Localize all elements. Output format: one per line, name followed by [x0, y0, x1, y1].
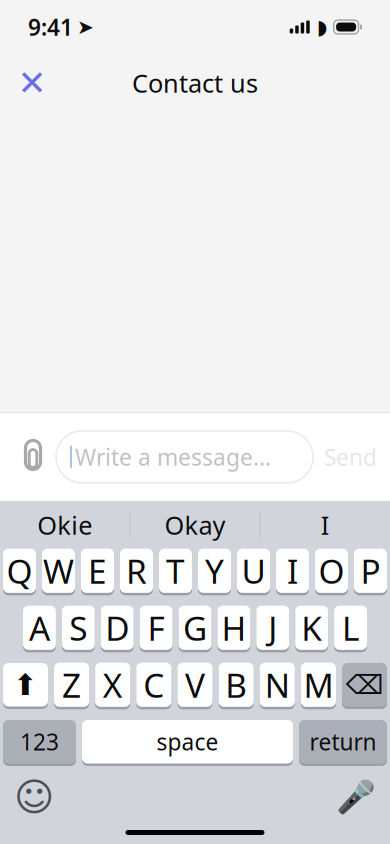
staticText: U: [241, 549, 265, 593]
button[interactable]: L: [334, 606, 367, 652]
staticText: ⌫: [345, 670, 383, 700]
button[interactable]: I: [276, 549, 309, 595]
button[interactable]: space: [82, 720, 293, 766]
button[interactable]: W: [42, 549, 75, 595]
staticText: Q: [6, 549, 32, 593]
staticText: ✕: [17, 63, 46, 103]
button[interactable]: Okie: [0, 501, 129, 549]
staticText: X: [103, 663, 123, 707]
button[interactable]: P: [354, 549, 387, 595]
button[interactable]: K: [295, 606, 328, 652]
button[interactable]: Emoji keyboard: [12, 775, 56, 819]
button[interactable]: Close: [10, 61, 54, 105]
button[interactable]: F: [140, 606, 173, 652]
button[interactable]: M: [301, 663, 336, 709]
staticText: K: [301, 606, 322, 650]
button[interactable]: O: [315, 549, 348, 595]
staticText: L: [342, 606, 359, 650]
button[interactable]: U: [237, 549, 270, 595]
staticText: A: [29, 606, 50, 650]
button[interactable]: I: [261, 501, 390, 549]
staticText: Y: [205, 549, 224, 593]
staticText: ◗: [317, 16, 328, 38]
button[interactable]: C: [136, 663, 171, 709]
staticText: ➤: [77, 16, 94, 38]
staticText: ☺: [14, 775, 54, 819]
button[interactable]: J: [256, 606, 289, 652]
button[interactable]: Okay: [130, 501, 260, 549]
staticText: N: [265, 663, 290, 707]
staticText: Write a message...: [75, 442, 271, 472]
button[interactable]: B: [219, 663, 254, 709]
button[interactable]: N: [260, 663, 295, 709]
button[interactable]: Attach file: [12, 432, 54, 482]
staticText: T: [166, 549, 185, 593]
staticText: space: [156, 727, 218, 757]
staticText: ⬆: [13, 668, 38, 701]
button[interactable]: 123: [3, 720, 76, 766]
staticText: O: [318, 549, 344, 593]
button[interactable]: return: [299, 720, 387, 766]
staticText: D: [105, 606, 129, 650]
staticText: Send: [324, 442, 377, 472]
staticText: R: [126, 549, 147, 593]
staticText: S: [69, 606, 87, 650]
staticText: V: [185, 663, 205, 707]
staticText: M: [303, 663, 333, 707]
staticText: F: [148, 606, 165, 650]
button[interactable]: T: [159, 549, 192, 595]
staticText: B: [225, 663, 247, 707]
button[interactable]: Shift: [3, 663, 48, 709]
button[interactable]: Z: [54, 663, 89, 709]
button[interactable]: S: [62, 606, 95, 652]
staticText: 9:41: [28, 12, 73, 42]
button[interactable]: Send: [313, 432, 388, 482]
button[interactable]: V: [177, 663, 212, 709]
button[interactable]: D: [101, 606, 134, 652]
staticText: W: [43, 549, 74, 593]
staticText: H: [221, 606, 246, 650]
staticText: return: [309, 727, 376, 757]
button[interactable]: R: [120, 549, 153, 595]
button[interactable]: Write a message...: [56, 431, 313, 483]
staticText: I: [321, 508, 330, 542]
button[interactable]: Q: [3, 549, 36, 595]
staticText: I: [287, 549, 298, 593]
button[interactable]: Delete: [342, 663, 387, 709]
staticText: Okie: [37, 508, 92, 542]
staticText: 123: [20, 727, 59, 757]
staticText: 🎤: [336, 779, 376, 815]
button[interactable]: Dictate: [334, 775, 378, 819]
button[interactable]: G: [179, 606, 211, 652]
button[interactable]: X: [95, 663, 130, 709]
button[interactable]: A: [23, 606, 56, 652]
button[interactable]: E: [81, 549, 114, 595]
staticText: Contact us: [132, 66, 258, 100]
staticText: G: [183, 606, 207, 650]
button[interactable]: Y: [198, 549, 231, 595]
staticText: E: [88, 549, 107, 593]
staticText: Z: [62, 663, 81, 707]
staticText: C: [143, 663, 164, 707]
button[interactable]: H: [217, 606, 250, 652]
staticText: P: [360, 549, 380, 593]
staticText: Okay: [164, 508, 225, 542]
staticText: J: [268, 606, 277, 650]
